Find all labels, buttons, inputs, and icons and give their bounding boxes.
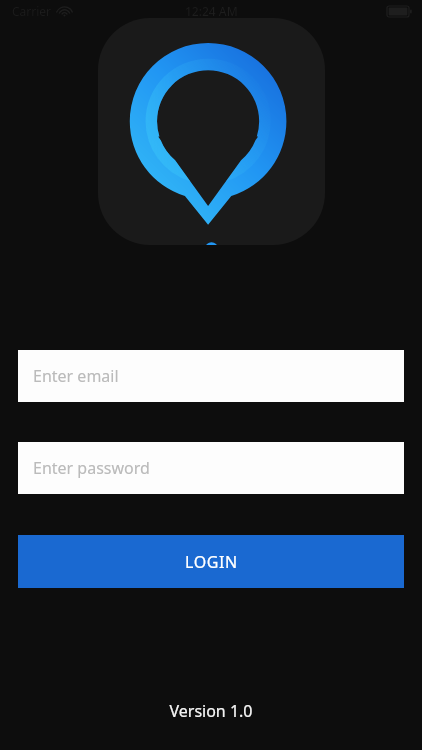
staticText: Enter email [33,365,119,387]
staticText: Version 1.0 [169,700,253,722]
button[interactable]: Enter email [18,350,404,402]
button[interactable]: LOGIN [18,535,404,588]
staticText: LOGIN [185,551,238,573]
staticText: 12:24 AM [185,3,238,19]
button[interactable]: Enter password [18,442,404,494]
staticText: Carrier [12,3,52,19]
staticText: Enter password [33,457,150,479]
